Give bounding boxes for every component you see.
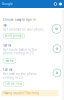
- staticText: Text me: [5, 59, 14, 63]
- staticText: Get a code texted to the: [3, 48, 37, 51]
- staticText: Having trouble? Get help: [3, 91, 39, 95]
- button[interactable]: Send prompt: [3, 33, 25, 38]
- staticText: Call me: [3, 68, 13, 71]
- staticText: phone ending in 23: [3, 52, 34, 55]
- staticText: Get a call on the phone: [3, 72, 37, 76]
- staticText: Text me: [3, 44, 12, 47]
- staticText: Tap: [3, 23, 7, 27]
- staticText: Call me now: [5, 82, 22, 86]
- staticText: ending in 23: [3, 76, 23, 79]
- staticText: Choose a way to sign in: [3, 18, 36, 21]
- button[interactable]: Search: [53, 2, 57, 6]
- staticText: Send prompt: [5, 34, 23, 37]
- button[interactable]: Text me: [3, 58, 16, 63]
- staticText: Google: [2, 2, 13, 6]
- button[interactable]: Account: [59, 2, 62, 6]
- button[interactable]: Call me now: [3, 81, 24, 86]
- staticText: Get a prompt on your phone: [3, 28, 44, 31]
